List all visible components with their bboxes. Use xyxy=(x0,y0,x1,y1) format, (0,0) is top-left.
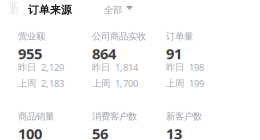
staticText: 营业额 xyxy=(18,31,45,42)
staticText: 新客户数 xyxy=(166,111,202,122)
staticText: 上周 xyxy=(18,78,36,89)
staticText: 昨日 xyxy=(18,62,36,73)
button[interactable]: 公司商品实收 xyxy=(92,32,166,88)
button[interactable]: 营业额 xyxy=(18,32,92,88)
staticText: 订单来源 xyxy=(28,3,72,16)
staticText: 1,814 xyxy=(115,61,138,74)
staticText: 198 xyxy=(189,61,204,74)
staticText: 199 xyxy=(189,77,204,90)
staticText: 13 xyxy=(166,124,182,140)
button[interactable]: 消费客户数 xyxy=(92,112,166,139)
staticText: 订单量 xyxy=(166,31,193,42)
button[interactable]: 商品销量 xyxy=(18,112,92,139)
staticText: 昨日 xyxy=(166,62,184,73)
button[interactable]: 订单量 xyxy=(166,32,240,88)
staticText: 商品销量 xyxy=(18,111,54,122)
staticText: 56 xyxy=(92,124,108,140)
staticText: 上周 xyxy=(92,78,110,89)
button[interactable]: 全部 xyxy=(104,4,133,16)
staticText: 91 xyxy=(166,44,182,63)
staticText: 收 xyxy=(10,0,18,10)
button[interactable]: 新客户数 xyxy=(166,112,240,139)
staticText: 864 xyxy=(92,44,116,63)
staticText: 2,129 xyxy=(41,61,64,74)
staticText: 割 xyxy=(10,6,18,16)
staticText: 上周 xyxy=(166,78,184,89)
staticText: 全部 xyxy=(104,4,122,16)
staticText: 2,183 xyxy=(41,77,64,90)
staticText: 1,700 xyxy=(115,77,138,90)
staticText: 955 xyxy=(18,44,42,63)
staticText: 100 xyxy=(18,124,42,140)
staticText: 公司商品实收 xyxy=(92,31,146,42)
staticText: 消费客户数 xyxy=(92,111,137,122)
staticText: 昨日 xyxy=(92,62,110,73)
